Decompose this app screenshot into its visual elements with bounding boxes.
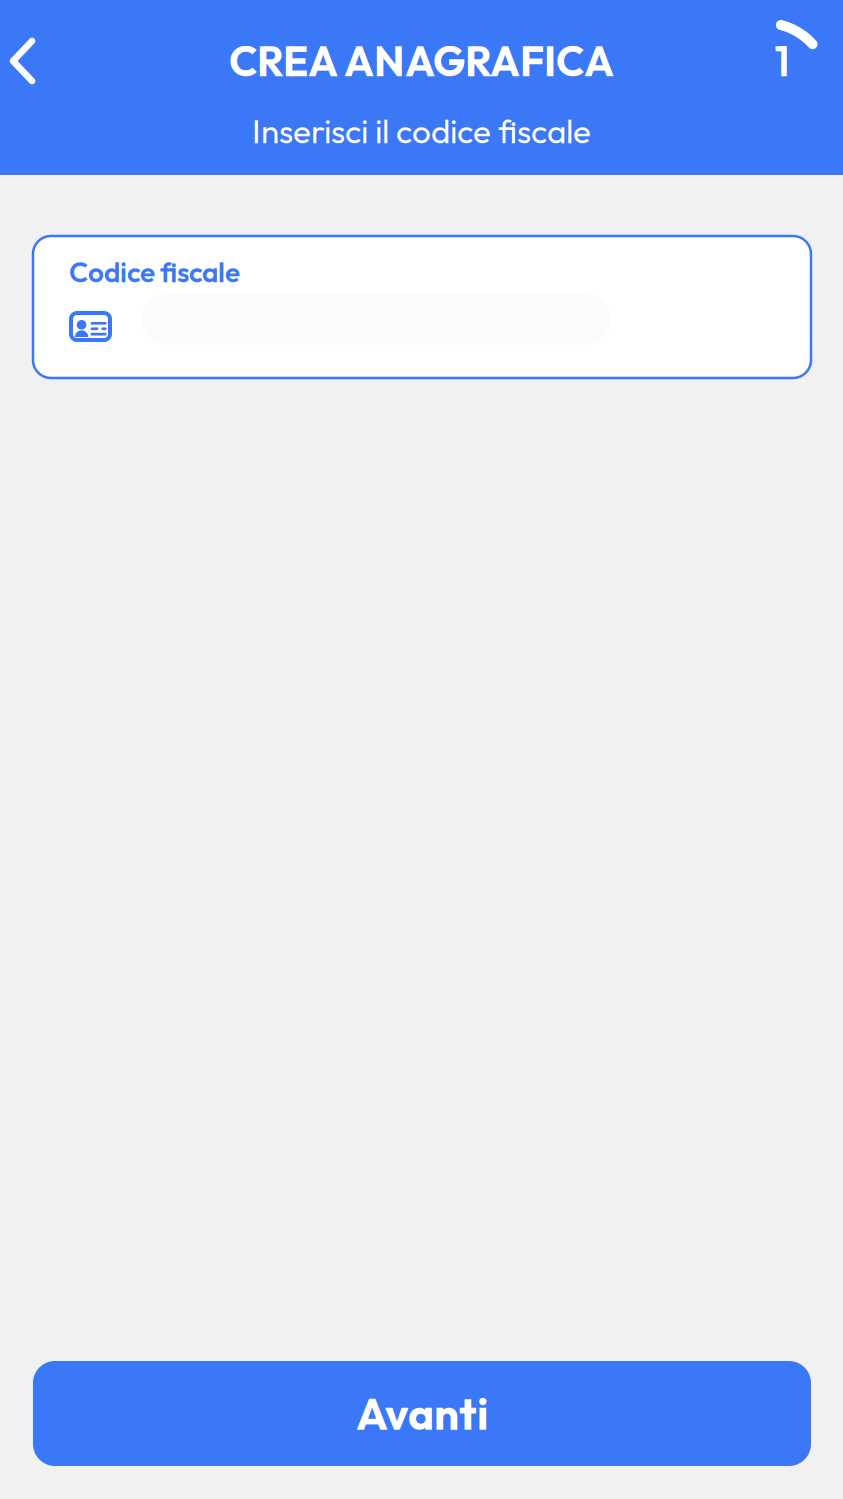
button[interactable]: Avanti — [33, 1361, 811, 1466]
staticText: 1 — [774, 35, 789, 87]
staticText: Avanti — [356, 1386, 488, 1441]
button[interactable]: Codice fiscale — [33, 236, 811, 378]
staticText: CREA ANAGRAFICA — [229, 35, 614, 87]
staticText: Inserisci il codice fiscale — [252, 110, 591, 152]
button[interactable]: Back — [0, 19, 76, 103]
staticText: Codice fiscale — [69, 254, 240, 290]
